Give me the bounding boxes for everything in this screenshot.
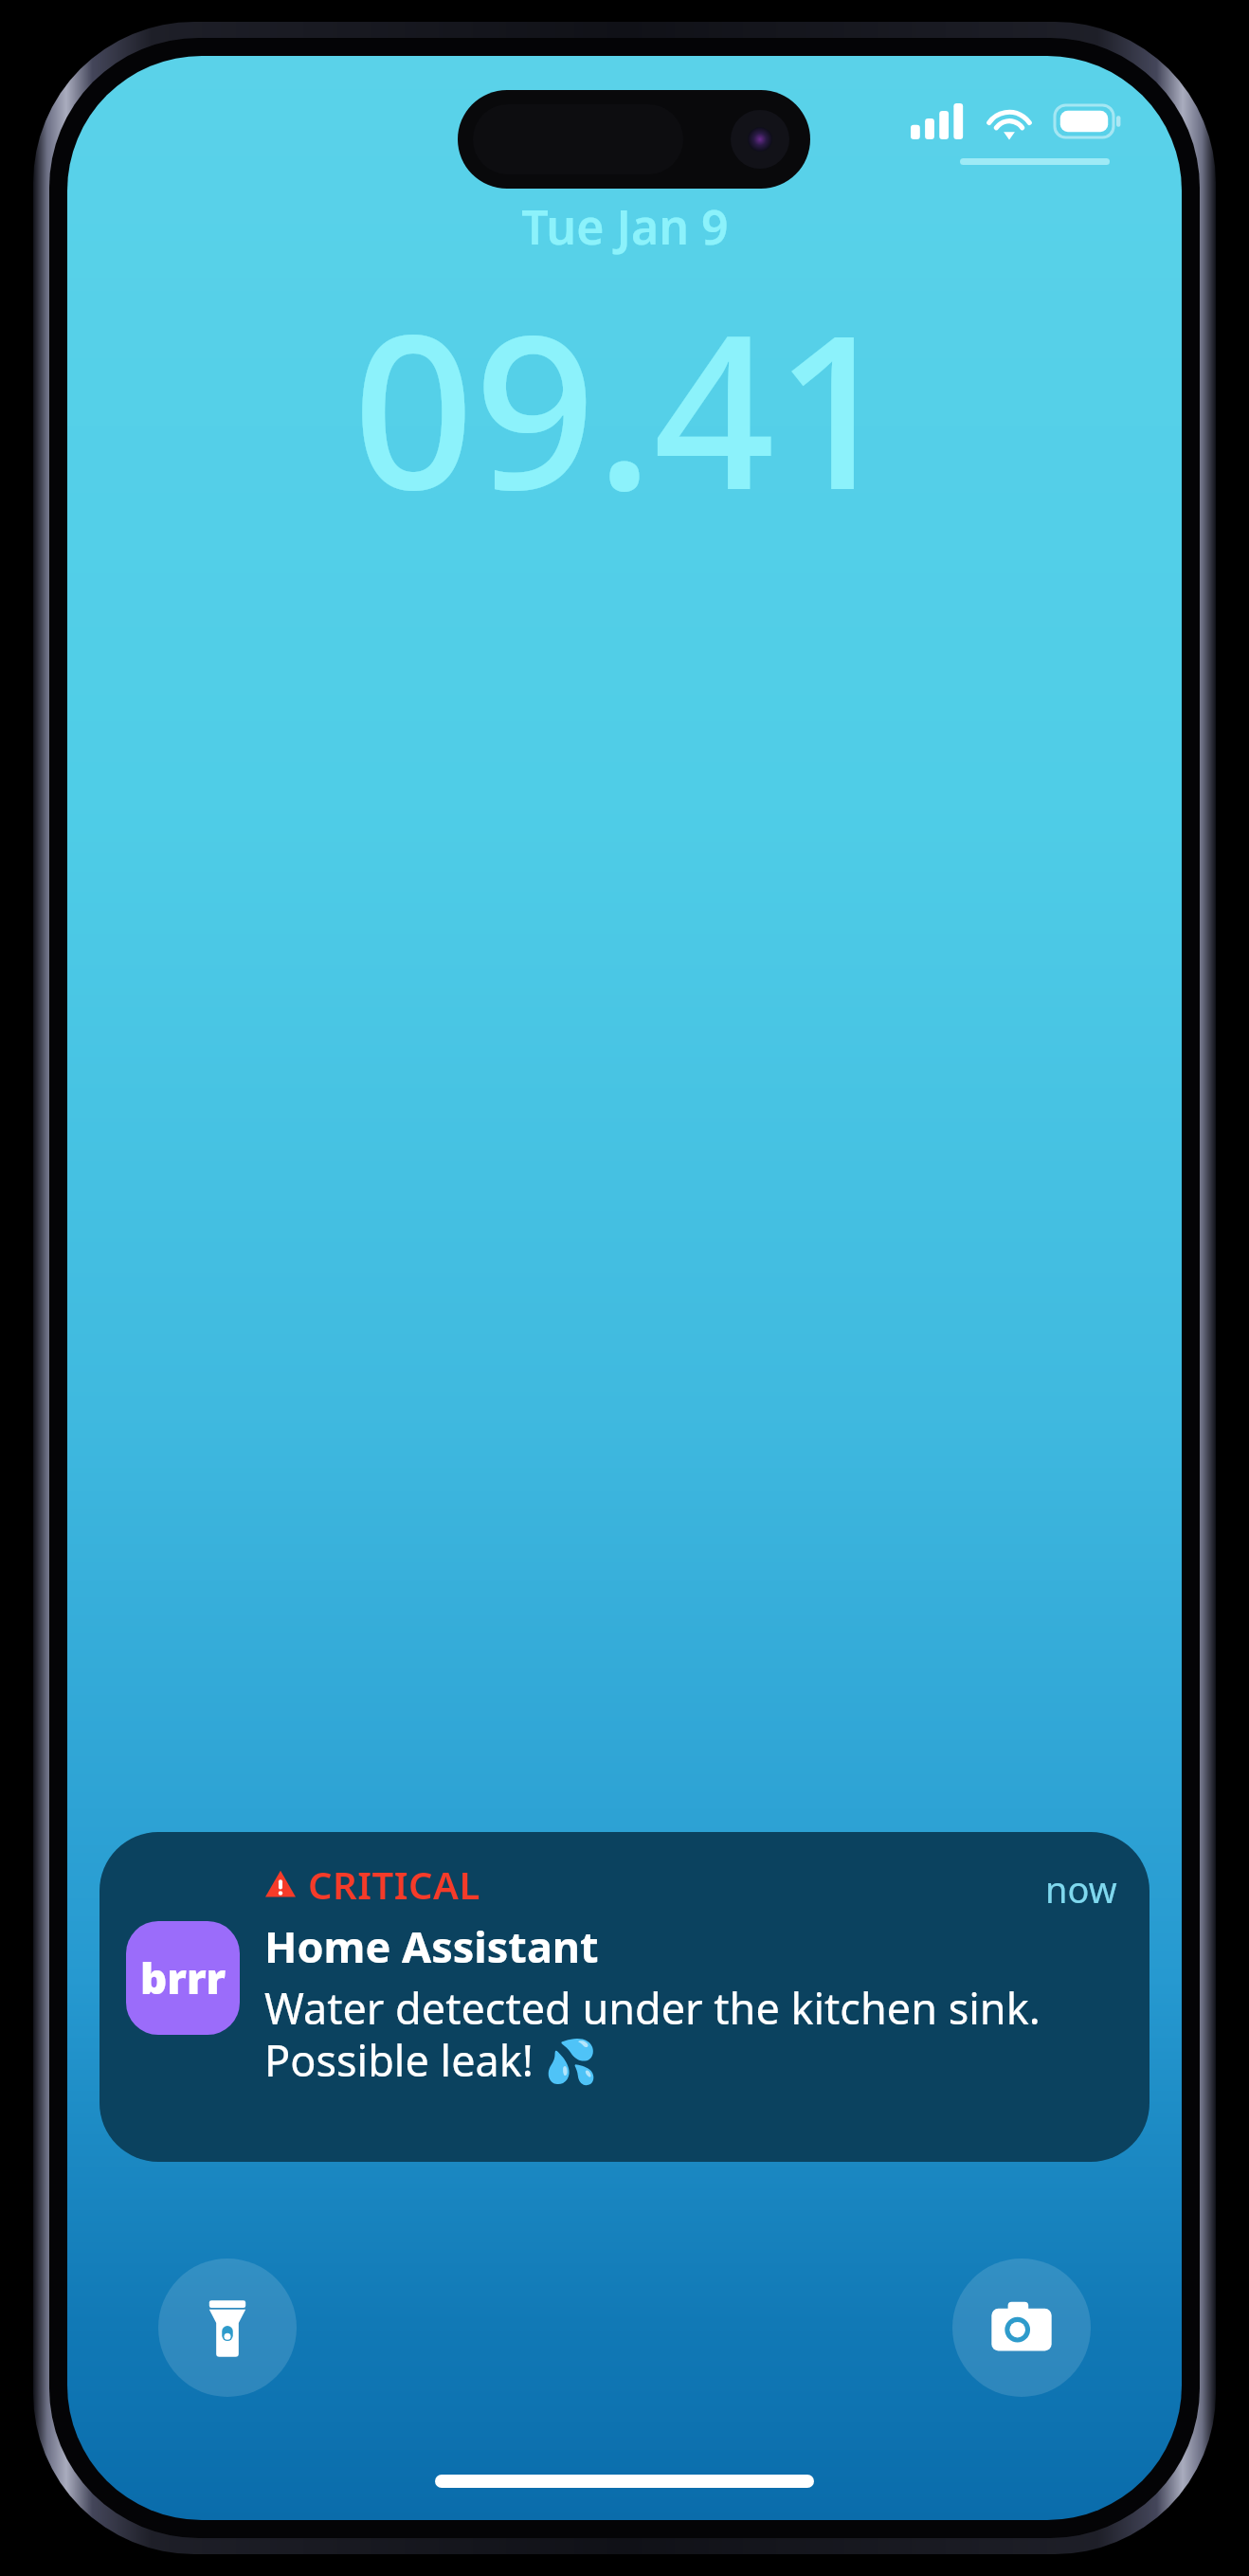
staticText: now bbox=[1045, 1864, 1117, 1914]
staticText: 09.41 bbox=[353, 263, 896, 552]
staticText: Home Assistant bbox=[264, 1917, 599, 1975]
staticText: Tue Jan 9 bbox=[521, 194, 729, 259]
staticText: brrr bbox=[140, 1950, 226, 2006]
button[interactable]: Flashlight bbox=[158, 2259, 297, 2397]
staticText: CRITICAL bbox=[308, 1859, 480, 1910]
button[interactable]: brrr bbox=[100, 1832, 1149, 2162]
button[interactable]: Camera bbox=[952, 2259, 1091, 2397]
staticText: Water detected under the kitchen sink. P… bbox=[264, 1979, 1041, 2089]
